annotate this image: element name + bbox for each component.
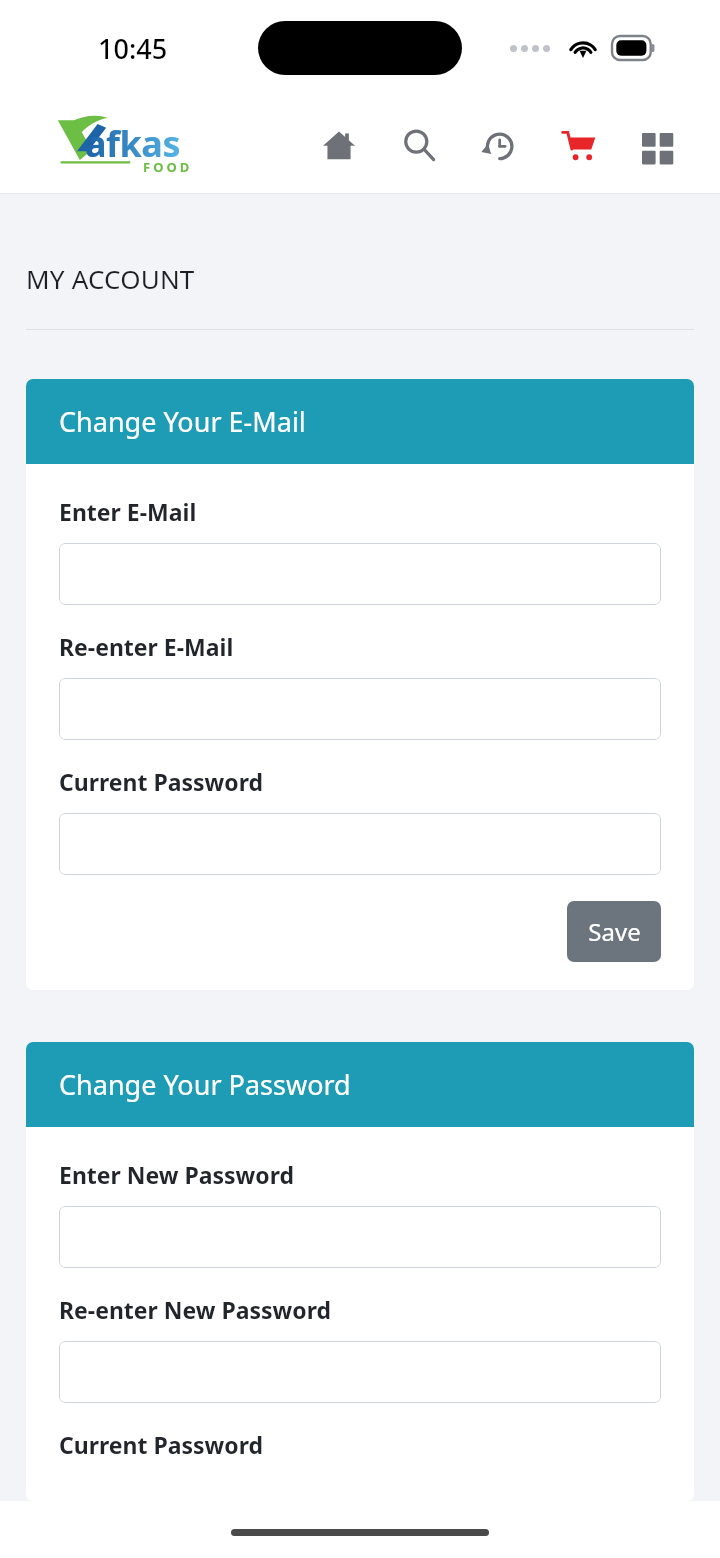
staticText: Re-enter New Password — [59, 1294, 332, 1325]
button[interactable]: Current Password — [59, 813, 661, 875]
staticText: Change Your E-Mail — [59, 403, 306, 440]
button[interactable]: Save — [567, 901, 661, 962]
staticText: Re-enter E-Mail — [59, 631, 234, 662]
staticText: Enter New Password — [59, 1159, 295, 1190]
staticText: Save — [588, 915, 641, 948]
button[interactable]: Re-enter New Password — [59, 1341, 661, 1403]
button[interactable]: Home — [318, 124, 360, 166]
staticText: Current Password — [59, 766, 264, 797]
button[interactable]: Enter E-Mail — [59, 543, 661, 605]
button[interactable]: Re-enter E-Mail — [59, 678, 661, 740]
staticText: FOODS — [143, 158, 197, 176]
staticText: 10:45 — [98, 30, 168, 67]
staticText: MY ACCOUNT — [26, 261, 195, 296]
staticText: Current Password — [59, 1429, 264, 1460]
button[interactable]: Shopping cart — [558, 124, 600, 166]
button[interactable]: Kafkas Foods home — [55, 114, 197, 176]
button[interactable]: Categories — [638, 124, 680, 166]
button[interactable]: Enter New Password — [59, 1206, 661, 1268]
button[interactable]: Order history — [478, 124, 520, 166]
staticText: afkas — [85, 119, 180, 168]
staticText: Change Your Password — [59, 1066, 351, 1103]
button[interactable]: Search — [398, 124, 440, 166]
staticText: Enter E-Mail — [59, 496, 197, 527]
